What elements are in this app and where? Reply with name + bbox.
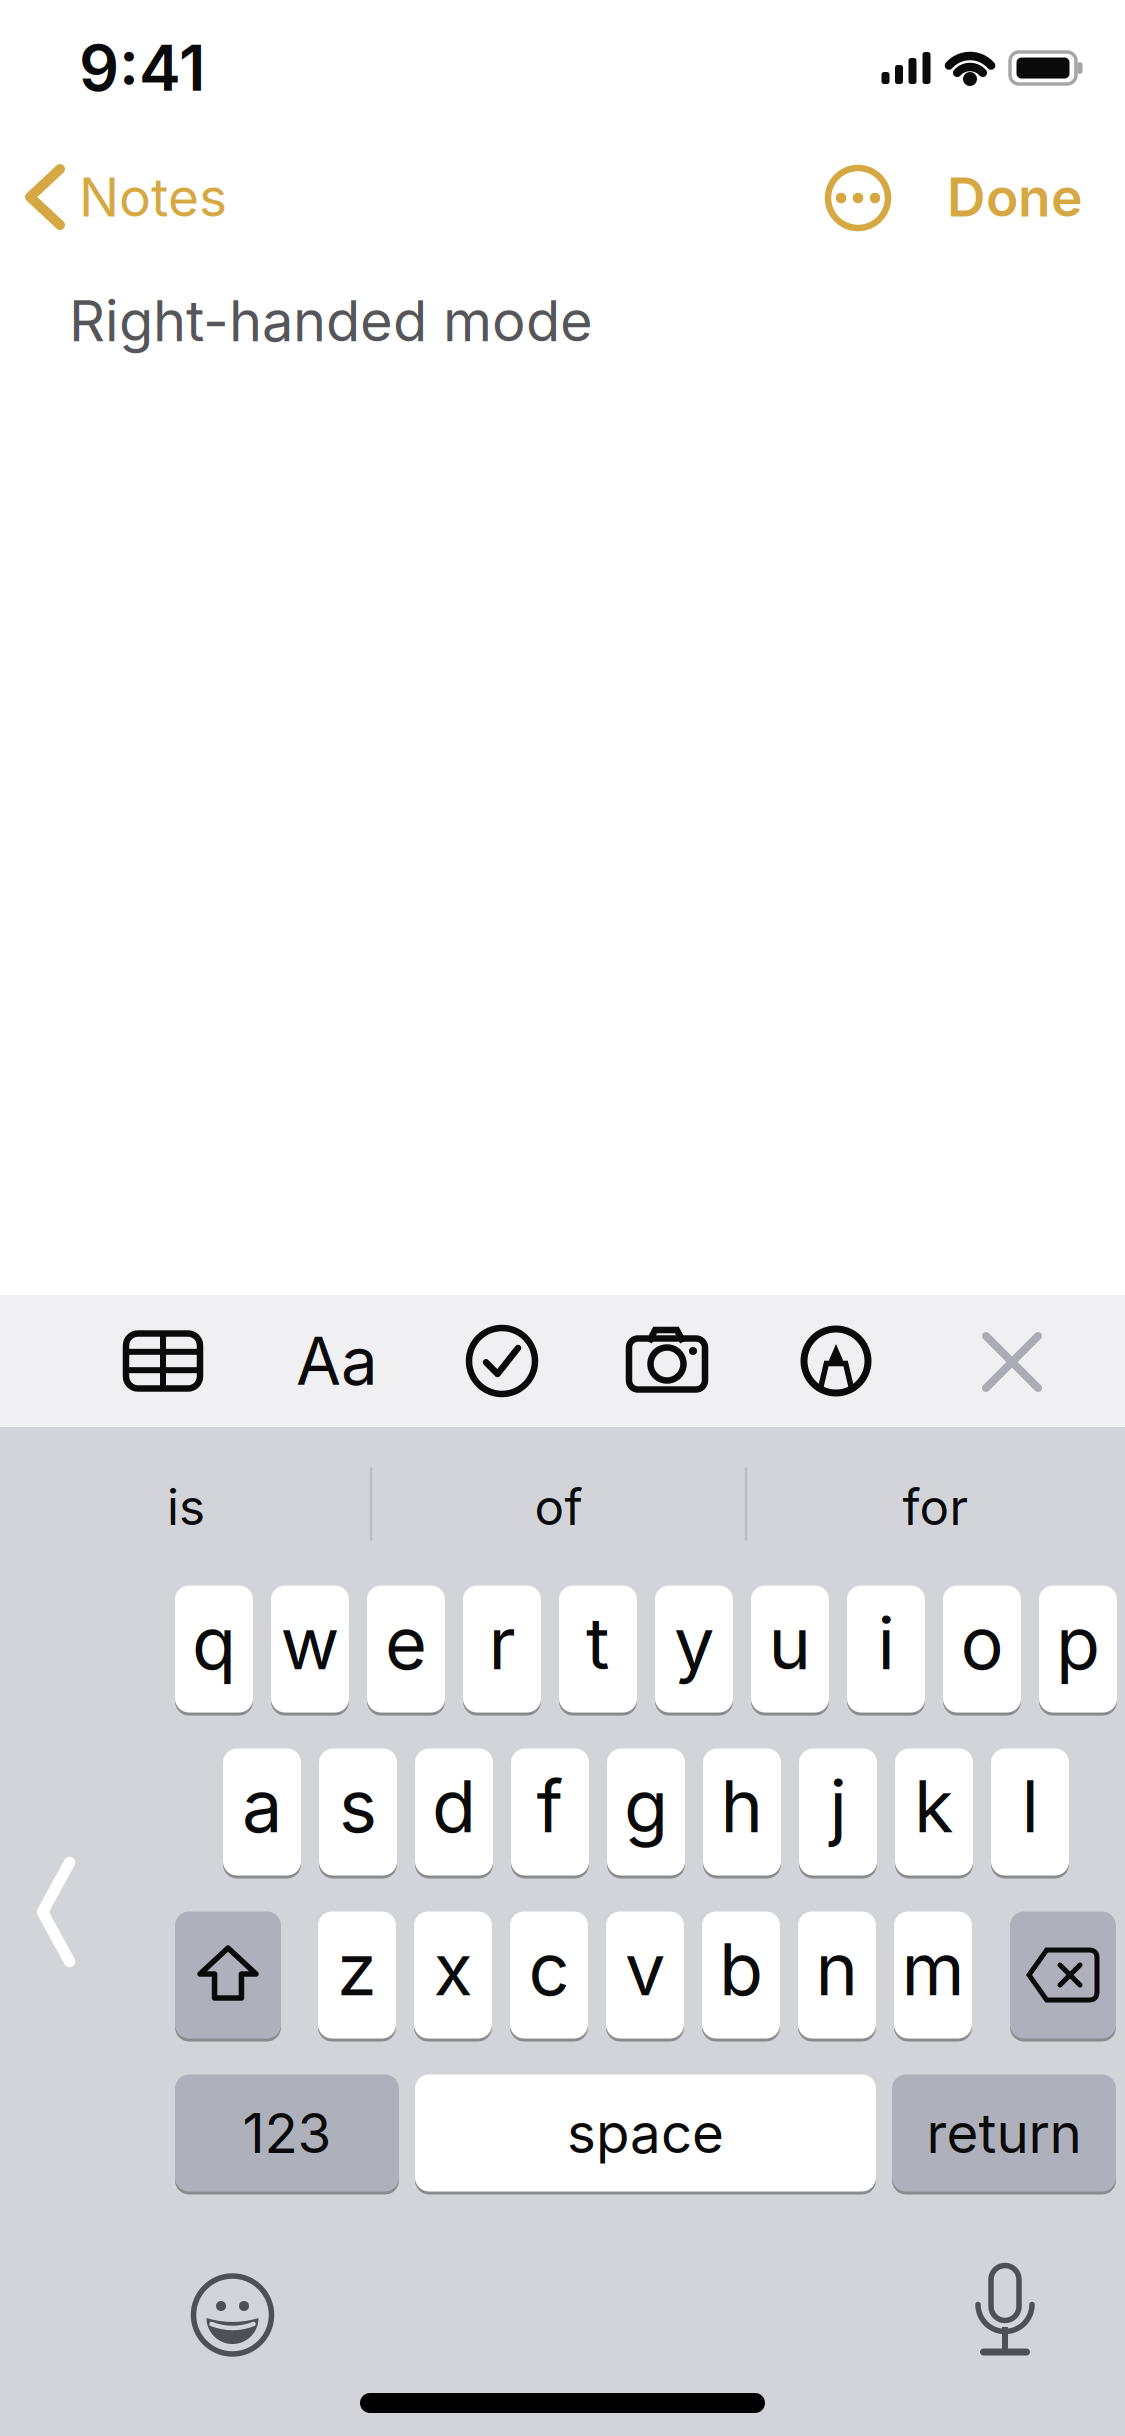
staticText: space [567, 2101, 724, 2165]
button[interactable]: i [847, 1584, 925, 1714]
button[interactable]: for [755, 1457, 1115, 1557]
staticText: v [625, 1926, 665, 2011]
button[interactable]: Notes [0, 152, 300, 242]
staticText: t [586, 1600, 610, 1685]
staticText: r [488, 1600, 515, 1685]
button[interactable]: j [799, 1747, 877, 1877]
button[interactable]: w [271, 1584, 349, 1714]
staticText: p [1056, 1600, 1100, 1685]
button[interactable]: Delete [1010, 1910, 1116, 2040]
button[interactable]: s [319, 1747, 397, 1877]
button[interactable]: d [415, 1747, 493, 1877]
button[interactable]: More [827, 167, 889, 229]
button[interactable]: n [798, 1910, 876, 2040]
button[interactable]: Emoji [191, 2274, 273, 2356]
button[interactable]: Switch to full keyboard [42, 1862, 69, 1961]
staticText: w [280, 1600, 339, 1685]
button[interactable]: b [702, 1910, 780, 2040]
button[interactable]: u [751, 1584, 829, 1714]
staticText: o [960, 1600, 1003, 1685]
button[interactable]: m [894, 1910, 972, 2040]
staticText: n [815, 1926, 858, 2011]
staticText: e [385, 1600, 427, 1685]
button[interactable]: Checklist [467, 1326, 537, 1396]
staticText: Right-handed mode [69, 288, 593, 354]
button[interactable]: t [559, 1584, 637, 1714]
staticText: x [433, 1926, 472, 2011]
button[interactable]: h [703, 1747, 781, 1877]
staticText: k [914, 1763, 954, 1848]
button[interactable]: g [607, 1747, 685, 1877]
button[interactable]: Camera [626, 1328, 708, 1400]
button[interactable]: Markup [803, 1328, 869, 1394]
staticText: j [829, 1763, 846, 1848]
button[interactable]: Shift [175, 1910, 281, 2040]
button[interactable]: z [318, 1910, 396, 2040]
button[interactable]: o [943, 1584, 1021, 1714]
button[interactable]: p [1039, 1584, 1117, 1714]
staticText: i [877, 1600, 894, 1685]
staticText: s [339, 1763, 377, 1848]
button[interactable]: k [895, 1747, 973, 1877]
button[interactable]: Dictation [975, 2253, 1035, 2363]
staticText: for [902, 1478, 968, 1536]
staticText: u [768, 1600, 811, 1685]
button[interactable]: Done [935, 152, 1095, 242]
staticText: m [901, 1926, 964, 2011]
button[interactable]: e [367, 1584, 445, 1714]
staticText: return [926, 2101, 1081, 2165]
button[interactable]: v [606, 1910, 684, 2040]
staticText: 123 [242, 2101, 331, 2165]
staticText: q [192, 1600, 236, 1685]
button[interactable]: c [510, 1910, 588, 2040]
button[interactable]: Insert table [123, 1326, 203, 1396]
staticText: a [242, 1763, 282, 1848]
staticText: 9:41 [79, 31, 205, 105]
button[interactable]: is [6, 1457, 366, 1557]
staticText: z [337, 1926, 377, 2011]
staticText: c [528, 1926, 569, 2011]
button[interactable]: Dismiss [986, 1336, 1038, 1388]
button[interactable]: x [414, 1910, 492, 2040]
button[interactable]: y [655, 1584, 733, 1714]
button[interactable]: return [892, 2073, 1116, 2193]
button[interactable]: space [415, 2073, 876, 2193]
button[interactable]: l [991, 1747, 1069, 1877]
staticText: Aa [296, 1322, 378, 1400]
staticText: f [536, 1763, 563, 1848]
button[interactable]: Format [296, 1322, 378, 1400]
staticText: g [624, 1763, 668, 1848]
staticText: d [432, 1763, 476, 1848]
button[interactable]: f [511, 1747, 589, 1877]
button[interactable]: a [223, 1747, 301, 1877]
button[interactable]: of [378, 1457, 738, 1557]
button[interactable]: r [463, 1584, 541, 1714]
button[interactable]: q [175, 1584, 253, 1714]
staticText: l [1021, 1763, 1038, 1848]
staticText: is [167, 1478, 205, 1536]
staticText: of [534, 1478, 582, 1536]
staticText: h [720, 1763, 763, 1848]
button[interactable]: 123 [175, 2073, 399, 2193]
staticText: b [719, 1926, 763, 2011]
staticText: y [674, 1600, 714, 1685]
staticText: Done [947, 165, 1083, 228]
staticText: Notes [79, 165, 227, 228]
